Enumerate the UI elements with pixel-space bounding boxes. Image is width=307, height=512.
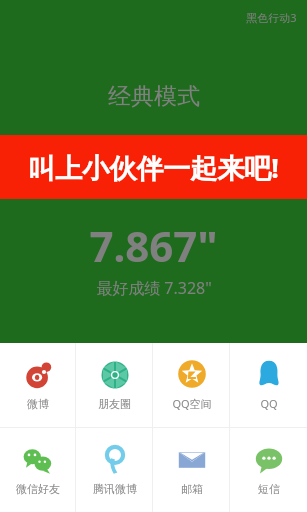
staticText: 微信好友	[16, 482, 60, 496]
button[interactable]: 叫上小伙伴一起来吧!	[0, 135, 307, 199]
button[interactable]: QQ	[230, 343, 307, 427]
staticText: 腾讯微博	[93, 482, 137, 496]
staticText: 黑色行动3	[246, 10, 297, 25]
button[interactable]: 腾讯微博	[76, 428, 153, 512]
staticText: 短信	[258, 482, 280, 496]
staticText: 经典模式	[108, 82, 200, 111]
staticText: 7.867"	[89, 217, 218, 274]
button[interactable]: 短信	[230, 428, 307, 512]
button[interactable]: 朋友圈	[76, 343, 153, 427]
staticText: 微博	[27, 397, 49, 411]
staticText: 叫上小伙伴一起来吧!	[28, 149, 279, 186]
button[interactable]: 微信好友	[0, 428, 76, 512]
button[interactable]: 微博	[0, 343, 76, 427]
staticText: QQ	[260, 396, 278, 411]
staticText: 邮箱	[181, 482, 203, 496]
staticText: QQ空间	[172, 396, 212, 411]
button[interactable]: 邮箱	[153, 428, 230, 512]
staticText: 最好成绩 7.328"	[96, 277, 212, 299]
button[interactable]: QQ空间	[153, 343, 230, 427]
staticText: 朋友圈	[98, 397, 131, 411]
